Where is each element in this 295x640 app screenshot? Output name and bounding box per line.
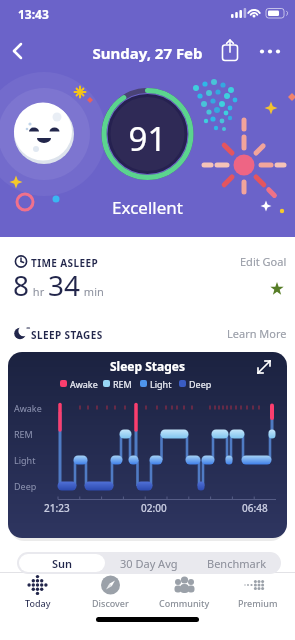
button[interactable]: 30 Day Avg [105,554,193,572]
staticText: Light [150,378,172,390]
staticText: Learn More [227,326,287,341]
staticText: Discover [92,597,129,609]
button[interactable]: Edit Goal [225,250,287,272]
staticText: Community [159,597,210,609]
staticText: 13:43 [18,6,49,22]
staticText: 34 [48,266,81,304]
button[interactable] [252,38,288,66]
staticText: Deep [14,480,37,492]
button[interactable]: Premium [227,574,288,610]
staticText: Awake [14,402,42,414]
staticText: 21:23 [44,501,70,515]
button[interactable]: Today [7,574,68,610]
staticText: Sun [52,556,73,571]
staticText: 30 Day Avg [120,556,178,571]
button[interactable]: Discover [80,574,141,610]
staticText: Light [14,454,36,466]
button[interactable]: Community [154,574,215,610]
staticText: hr [30,284,48,299]
staticText: Today [25,597,51,609]
staticText: Sleep Stages [0,358,295,374]
staticText: Awake [70,378,98,390]
staticText: Excellent [0,196,295,219]
button[interactable]: Learn More [220,322,287,344]
button[interactable]: Benchmark [193,554,281,572]
staticText: Benchmark [207,556,267,571]
staticText: min [81,284,104,299]
button[interactable] [4,38,36,66]
staticText: 8 [13,266,30,304]
staticText: Edit Goal [240,254,287,269]
staticText: SLEEP STAGES [31,328,103,342]
staticText: 06:48 [242,501,268,515]
staticText: Premium [238,597,278,609]
staticText: 91 [0,116,295,161]
button[interactable] [250,354,282,382]
staticText: TIME ASLEEP [31,256,99,270]
button[interactable]: Sun [19,554,105,572]
staticText: Sunday, 27 Feb [0,43,295,63]
button[interactable] [216,38,246,66]
staticText: REM [14,428,33,440]
staticText: 02:00 [141,501,167,515]
staticText: REM [113,378,132,390]
staticText: Deep [189,378,212,390]
